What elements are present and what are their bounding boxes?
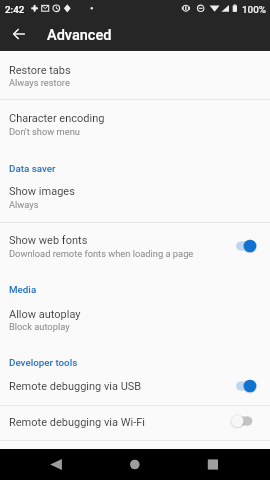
- button[interactable]: Switch on: [230, 377, 260, 395]
- staticText: 100%: [242, 4, 266, 15]
- button[interactable]: Switch on: [230, 237, 260, 255]
- staticText: Remote debugging via USB: [9, 380, 142, 393]
- button[interactable]: [0, 223, 270, 272]
- staticText: Show web fonts: [9, 234, 88, 247]
- button[interactable]: [0, 100, 270, 148]
- staticText: Media: [9, 284, 37, 295]
- staticText: Don't show menu: [9, 126, 80, 137]
- button[interactable]: [0, 300, 270, 344]
- button[interactable]: [0, 51, 270, 99]
- staticText: Show images: [9, 185, 75, 198]
- staticText: Allow autoplay: [9, 308, 81, 321]
- button[interactable]: [0, 178, 270, 222]
- staticText: Advanced: [47, 27, 112, 44]
- staticText: Character encoding: [9, 112, 105, 125]
- staticText: Developer tools: [9, 357, 78, 368]
- staticText: Download remote fonts when loading a pag…: [9, 248, 194, 259]
- staticText: Block autoplay: [9, 321, 70, 332]
- staticText: 2:42: [5, 4, 25, 15]
- button[interactable]: [0, 406, 270, 440]
- staticText: Data saver: [9, 163, 56, 174]
- staticText: Always restore: [9, 77, 70, 88]
- staticText: Remote debugging via Wi-Fi: [9, 416, 145, 429]
- button[interactable]: Switch off: [230, 412, 260, 430]
- staticText: Always: [9, 199, 39, 210]
- staticText: Restore tabs: [9, 64, 71, 77]
- button[interactable]: [0, 369, 270, 405]
- button[interactable]: Navigate up: [4, 18, 34, 49]
